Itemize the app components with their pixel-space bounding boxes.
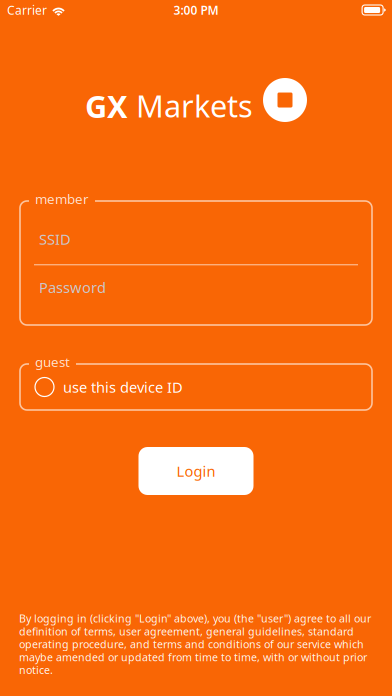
button[interactable]: use this device ID [20,364,372,410]
staticText: guest [35,353,70,371]
staticText: Password [39,278,106,297]
staticText: By logging in (clicking "Login" above), … [19,611,371,677]
button[interactable]: Password [20,277,372,297]
staticText: 3:00 PM [173,2,218,18]
staticText: Carrier [7,2,47,18]
staticText: member [35,190,89,208]
staticText: GX [85,86,128,126]
staticText: use this device ID [63,377,183,397]
staticText: SSID [39,229,71,249]
staticText: Markets [128,85,253,126]
staticText: Login [176,461,215,481]
button[interactable]: SSID [20,229,372,249]
button[interactable]: Login [138,447,253,495]
